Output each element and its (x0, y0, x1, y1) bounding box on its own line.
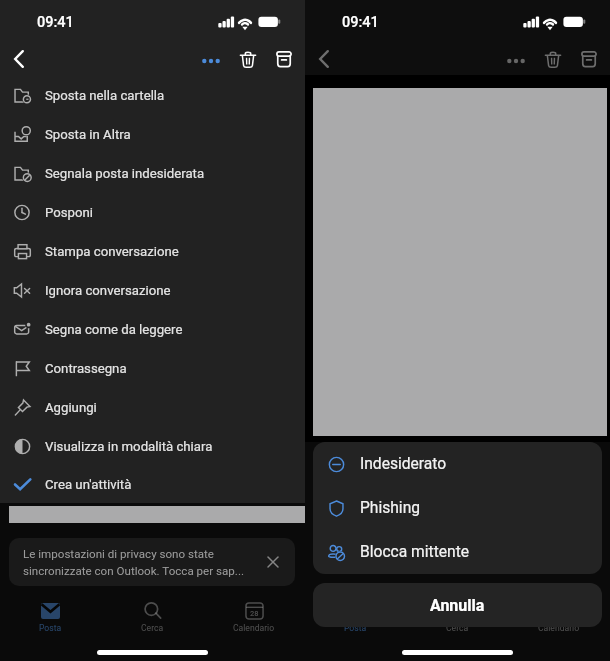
staticText: Indesiderato (360, 455, 447, 473)
staticText: Calendario (538, 623, 580, 633)
button[interactable]: More options (498, 44, 534, 77)
button[interactable]: Indesiderato (313, 442, 602, 486)
button[interactable]: Crea un'attività (0, 466, 305, 503)
button[interactable]: Segna come da leggere (0, 310, 305, 349)
staticText: Cerca (446, 623, 469, 633)
button[interactable]: Delete (535, 43, 571, 76)
button[interactable]: Posta (0, 603, 101, 633)
staticText: Aggiungi (45, 400, 97, 415)
button[interactable]: Ignora conversazione (0, 271, 305, 310)
button[interactable]: 28 (203, 603, 305, 633)
staticText: 28 (250, 609, 259, 618)
staticText: Calendario (233, 623, 275, 633)
staticText: Sposta in Altra (45, 127, 131, 142)
staticText: Stampa conversazione (45, 244, 179, 259)
button[interactable]: Posponi (0, 193, 305, 232)
button[interactable]: More options (193, 44, 229, 77)
staticText: sincronizzate con Outlook. Tocca per sap… (23, 564, 245, 578)
button[interactable]: Delete (230, 43, 266, 76)
button[interactable]: Cerca (406, 603, 508, 633)
button[interactable]: Visualizza in modalità chiara (0, 427, 305, 466)
staticText: Visualizza in modalità chiara (45, 439, 213, 454)
button[interactable]: Posta (305, 603, 406, 633)
button[interactable]: Phishing (313, 486, 602, 530)
staticText: Annulla (430, 596, 485, 615)
staticText: Posta (39, 623, 62, 633)
button[interactable]: Archive (266, 42, 302, 75)
staticText: Segnala posta indesiderata (45, 166, 205, 181)
button[interactable]: Annulla (313, 583, 602, 627)
button[interactable]: Le impostazioni di privacy sono state (9, 538, 295, 586)
staticText: Cerca (141, 623, 164, 633)
staticText: Le impostazioni di privacy sono state (23, 547, 215, 561)
staticText: Segna come da leggere (45, 322, 183, 337)
staticText: Sposta nella cartella (45, 88, 165, 103)
button[interactable]: Back (2, 42, 36, 75)
staticText: 09:41 (342, 14, 379, 31)
button[interactable]: Aggiungi (0, 388, 305, 427)
button[interactable]: Blocca mittente (313, 530, 602, 574)
button[interactable]: Archive (571, 42, 607, 75)
button[interactable]: Sposta in Altra (0, 115, 305, 154)
staticText: Posponi (45, 205, 93, 220)
staticText: Ignora conversazione (45, 283, 171, 298)
staticText: Phishing (360, 499, 421, 517)
staticText: Contrassegna (45, 361, 127, 376)
staticText: 09:41 (37, 14, 74, 31)
staticText: Posta (344, 623, 367, 633)
button[interactable]: Back (307, 42, 341, 75)
staticText: Crea un'attività (45, 477, 132, 492)
button[interactable]: Contrassegna (0, 349, 305, 388)
button[interactable]: Segnala posta indesiderata (0, 154, 305, 193)
button[interactable]: 28 (508, 603, 610, 633)
button[interactable]: Cerca (101, 603, 203, 633)
button[interactable]: Close (259, 548, 287, 576)
staticText: Blocca mittente (360, 543, 469, 561)
button[interactable]: Sposta nella cartella (0, 76, 305, 115)
button[interactable]: Stampa conversazione (0, 232, 305, 271)
